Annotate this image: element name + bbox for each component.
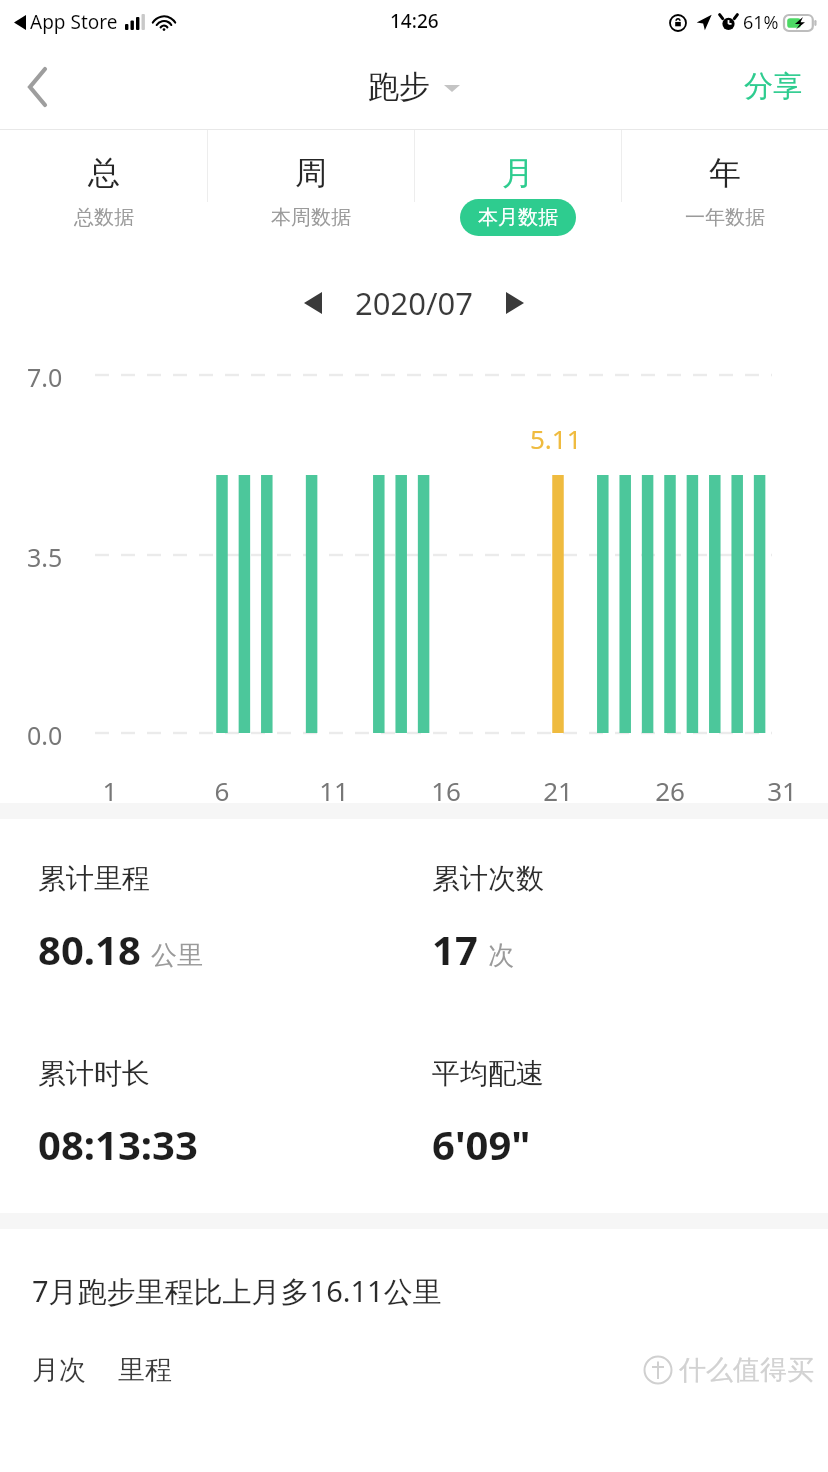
button[interactable]: 总 [0,130,207,258]
staticText: 跑步 [368,67,430,106]
staticText: 次 [488,939,514,972]
staticText: 月 [502,153,534,193]
staticText: 6'09" [432,1117,531,1171]
staticText: 一年数据 [685,205,765,230]
button[interactable]: 跑步 [368,67,460,106]
button[interactable]: 分享 [718,44,828,129]
button[interactable]: Previous month [285,275,341,331]
staticText: 2020/07 [355,282,473,324]
staticText: 总数据 [74,205,134,230]
button[interactable]: Back [0,44,76,129]
staticText: 平均配速 [432,1056,544,1091]
staticText: 什么值得买 [679,1353,814,1387]
staticText: 17 [432,922,478,976]
staticText: 里程 [118,1353,172,1387]
staticText: 周 [295,153,327,193]
staticText: 本月数据 [478,205,558,230]
staticText: 本周数据 [271,205,351,230]
staticText: 26 [654,773,686,803]
staticText: 11 [318,773,350,803]
staticText: 公里 [151,939,203,972]
button[interactable]: 周 [208,130,414,258]
staticText: 分享 [744,68,802,105]
staticText: 0.0 [27,718,63,752]
staticText: 7月跑步里程比上月多16.11公里 [32,1271,442,1311]
staticText: 7.0 [27,360,63,394]
staticText: 3.5 [27,540,63,574]
button[interactable]: 年 [622,130,828,258]
staticText: 月次 [32,1353,86,1387]
button[interactable]: 月 [415,130,621,258]
staticText: 1 [94,773,126,803]
staticText: 6 [206,773,238,803]
staticText: 61% [743,10,779,35]
staticText: 累计里程 [38,861,150,896]
staticText: 14:26 [390,8,439,34]
staticText: 累计时长 [38,1056,150,1091]
staticText: 年 [709,153,741,193]
staticText: 31 [766,773,798,803]
button[interactable]: Next month [487,275,543,331]
staticText: 80.18 [38,922,141,976]
staticText: 21 [542,773,574,803]
staticText: 累计次数 [432,861,544,896]
staticText: App Store [30,9,118,35]
staticText: 5.11 [530,421,582,456]
staticText: 总 [88,153,120,193]
staticText: 16 [430,773,462,803]
staticText: 08:13:33 [38,1117,198,1171]
